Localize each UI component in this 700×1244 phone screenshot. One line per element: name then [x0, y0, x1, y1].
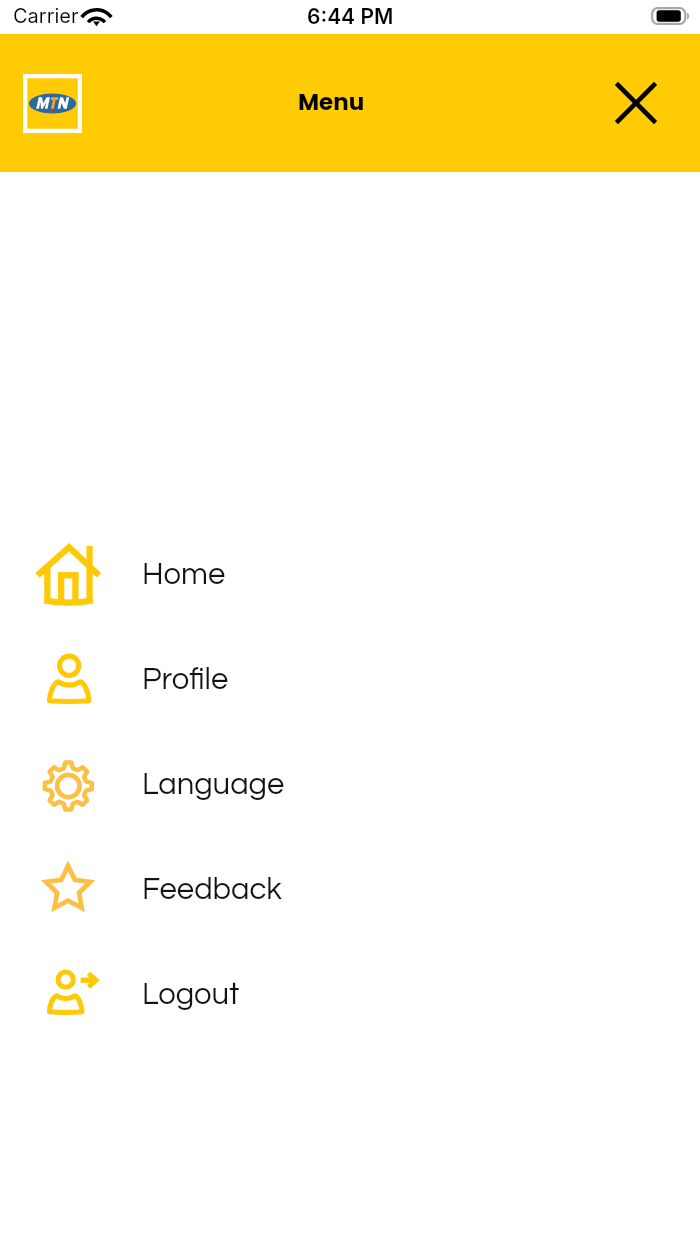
staticText: Profile	[142, 664, 229, 696]
staticText: Menu	[298, 86, 365, 118]
button[interactable]: Language	[0, 732, 700, 837]
button[interactable]: Profile	[0, 627, 700, 732]
staticText: 6:44 PM	[307, 4, 394, 29]
button[interactable]: Logout	[0, 942, 700, 1047]
button[interactable]: Close	[608, 75, 664, 131]
button[interactable]: MTN logo	[23, 74, 82, 133]
button[interactable]: Home	[0, 522, 700, 627]
staticText: Feedback	[142, 874, 282, 906]
button[interactable]: Feedback	[0, 837, 700, 942]
staticText: Carrier	[13, 4, 79, 28]
staticText: Language	[142, 769, 285, 801]
staticText: Logout	[142, 979, 240, 1011]
staticText: Home	[142, 559, 226, 591]
